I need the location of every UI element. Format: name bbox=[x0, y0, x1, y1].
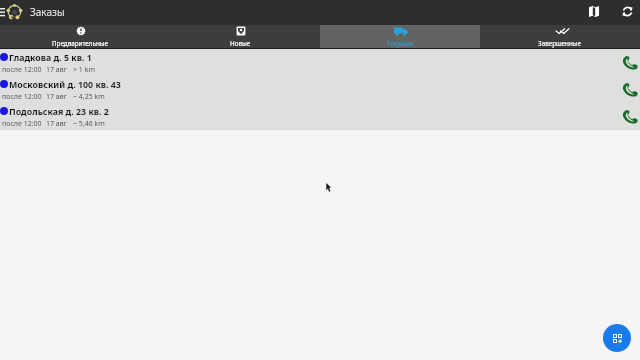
staticText: 17 авг bbox=[46, 92, 67, 102]
button[interactable]: Call bbox=[619, 106, 640, 128]
button[interactable]: Scan QR code bbox=[603, 324, 631, 352]
staticText: 17 авг bbox=[46, 65, 67, 75]
staticText: Новые bbox=[230, 39, 251, 48]
button[interactable]: Новые bbox=[160, 25, 320, 48]
staticText: ~ 5,46 km bbox=[73, 119, 105, 129]
staticText: 17 авг bbox=[46, 119, 67, 129]
staticText: > 1 km bbox=[73, 65, 95, 75]
staticText: после 12:00 bbox=[2, 92, 42, 102]
staticText: Подольская д. 23 кв. 2 bbox=[9, 106, 109, 118]
button[interactable]: Предварительные bbox=[0, 25, 160, 48]
button[interactable]: Московский д. 100 кв. 43 bbox=[0, 76, 640, 103]
staticText: после 12:00 bbox=[2, 65, 42, 75]
button[interactable]: Open navigation menu bbox=[0, 0, 5, 25]
button[interactable]: Завершенные bbox=[480, 25, 640, 48]
staticText: ~ 4,25 km bbox=[73, 92, 105, 102]
button[interactable]: Call bbox=[619, 52, 640, 74]
staticText: Завершенные bbox=[538, 39, 582, 48]
staticText: Гладкова д. 5 кв. 1 bbox=[9, 52, 92, 64]
staticText: Текущие bbox=[387, 39, 414, 48]
staticText: Заказы bbox=[30, 5, 65, 19]
button[interactable]: Refresh bbox=[616, 0, 638, 22]
button[interactable]: Map bbox=[583, 0, 605, 22]
button[interactable]: Гладкова д. 5 кв. 1 bbox=[0, 49, 640, 76]
staticText: Московский д. 100 кв. 43 bbox=[9, 79, 121, 91]
button[interactable]: Call bbox=[619, 79, 640, 101]
button[interactable]: Подольская д. 23 кв. 2 bbox=[0, 103, 640, 130]
staticText: Предварительные bbox=[52, 39, 109, 48]
button[interactable]: Текущие bbox=[320, 25, 480, 48]
staticText: после 12:00 bbox=[2, 119, 42, 129]
